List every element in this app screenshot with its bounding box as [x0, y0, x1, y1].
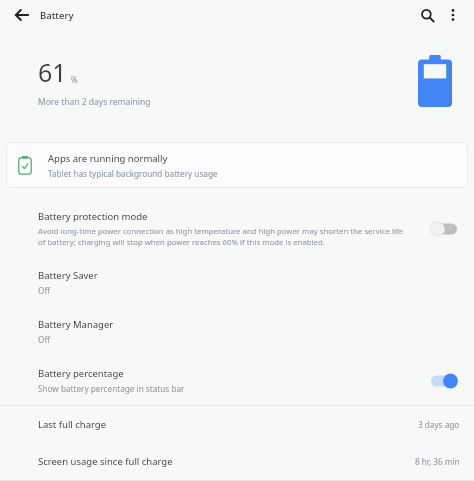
button[interactable]: Search — [414, 2, 440, 28]
staticText: Battery Saver — [38, 269, 98, 282]
button[interactable]: Apps are running normally — [6, 142, 468, 188]
staticText: Off — [38, 285, 51, 296]
staticText: Avoid long-time power connection as high… — [38, 226, 412, 248]
button[interactable]: Screen usage since full charge — [0, 443, 474, 480]
button[interactable]: More options — [440, 2, 466, 28]
staticText: Apps are running normally — [48, 152, 168, 165]
staticText: Off — [38, 334, 51, 345]
staticText: Tablet has typical background battery us… — [48, 168, 218, 179]
staticText: 61 — [38, 55, 67, 89]
button[interactable]: Battery protection mode — [0, 200, 474, 258]
staticText: Screen usage since full charge — [38, 455, 415, 468]
staticText: Last full charge — [38, 418, 418, 431]
staticText: Battery — [40, 9, 74, 22]
staticText: More than 2 days remaining — [38, 96, 151, 108]
button[interactable]: Battery protection mode toggle — [424, 216, 464, 242]
button[interactable]: Battery Saver — [0, 258, 474, 307]
staticText: Show battery percentage in status bar — [38, 383, 185, 394]
staticText: Battery Manager — [38, 318, 114, 331]
staticText: Battery protection mode — [38, 210, 148, 223]
staticText: 3 days ago — [418, 419, 460, 430]
button[interactable]: Last full charge — [0, 406, 474, 443]
button[interactable]: Battery percentage toggle — [424, 368, 464, 394]
staticText: % — [71, 74, 78, 85]
staticText: 8 hr, 36 min — [415, 456, 460, 467]
button[interactable]: Battery percentage — [0, 356, 474, 405]
button[interactable]: Battery Manager — [0, 307, 474, 356]
button[interactable]: Back — [8, 1, 36, 29]
staticText: Battery percentage — [38, 367, 124, 380]
